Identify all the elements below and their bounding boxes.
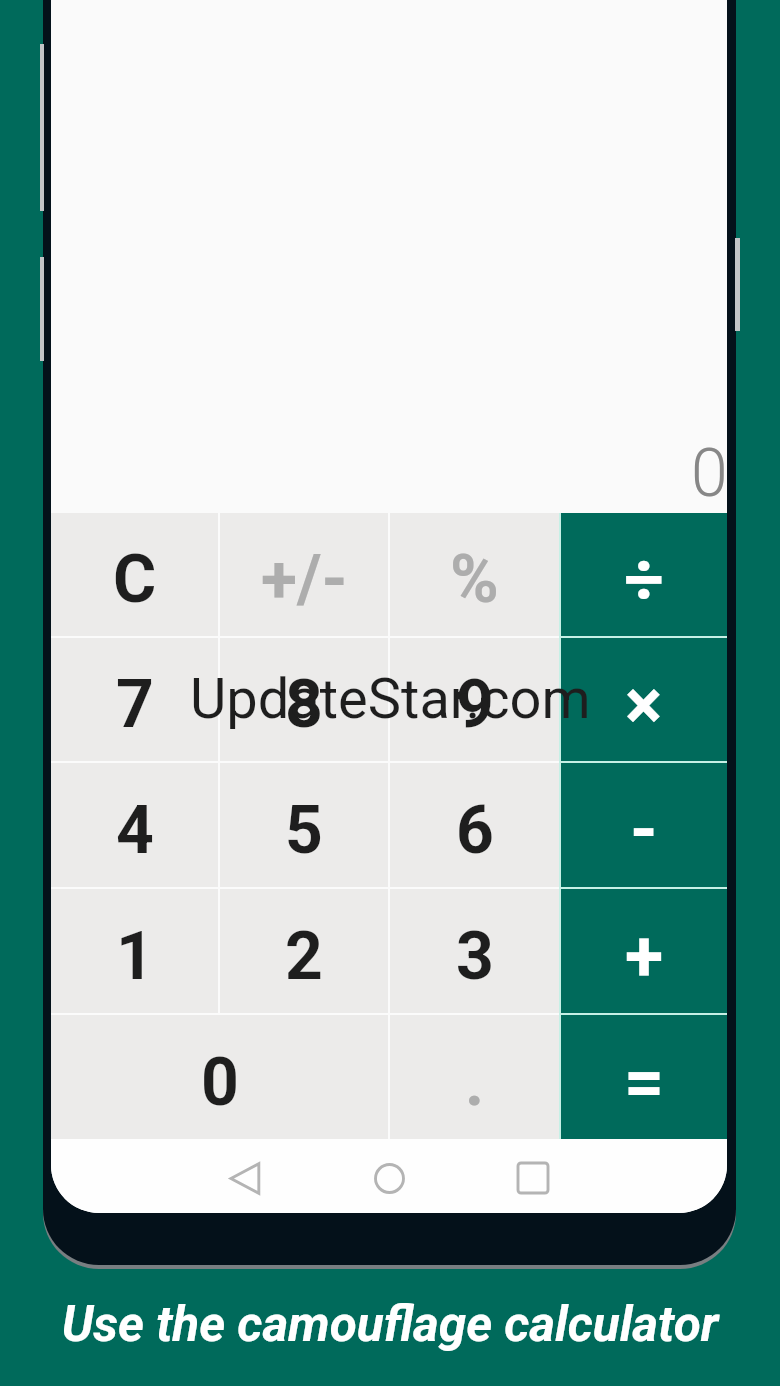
staticText: 7 [116, 666, 154, 743]
button[interactable]: + [561, 889, 727, 1013]
button[interactable]: ÷ [561, 513, 727, 636]
staticText: = [624, 1041, 665, 1123]
staticText: + [625, 915, 664, 997]
staticText: UpdateStar.com [190, 666, 591, 732]
staticText: +/- [261, 541, 348, 618]
staticText: 6 [456, 792, 494, 869]
staticText: 0 [201, 1044, 239, 1121]
button[interactable]: . [390, 1015, 559, 1139]
staticText: - [630, 789, 658, 871]
button[interactable]: × [561, 638, 727, 761]
button[interactable]: Back [202, 1141, 288, 1213]
staticText: 3 [456, 918, 494, 995]
staticText: C [113, 541, 157, 618]
staticText: 5 [285, 792, 323, 869]
button[interactable]: 9 [390, 638, 559, 761]
staticText: 2 [285, 918, 323, 995]
staticText: 1 [116, 918, 154, 995]
staticText: ÷ [624, 539, 664, 621]
button[interactable]: 0 [51, 1015, 388, 1139]
button[interactable]: C [51, 513, 218, 636]
button[interactable]: +/- [220, 513, 388, 636]
button[interactable]: - [561, 763, 727, 887]
button[interactable]: 7 [51, 638, 218, 761]
button[interactable]: 8 [220, 638, 388, 761]
button[interactable]: Home [346, 1141, 432, 1213]
staticText: 9 [456, 666, 494, 743]
button[interactable]: 4 [51, 763, 218, 887]
button[interactable]: = [561, 1015, 727, 1139]
button[interactable]: 6 [390, 763, 559, 887]
button[interactable]: 1 [51, 889, 218, 1013]
staticText: 0 [691, 435, 727, 512]
button[interactable]: 2 [220, 889, 388, 1013]
staticText: × [625, 664, 663, 746]
button[interactable]: Recent apps [490, 1141, 576, 1213]
button[interactable]: 5 [220, 763, 388, 887]
staticText: Use the camouflage calculator [0, 1295, 780, 1353]
button[interactable]: 3 [390, 889, 559, 1013]
staticText: 8 [285, 666, 323, 743]
staticText: . [465, 1044, 485, 1121]
staticText: % [450, 541, 499, 618]
button[interactable]: % [390, 513, 559, 636]
staticText: 4 [116, 792, 154, 869]
